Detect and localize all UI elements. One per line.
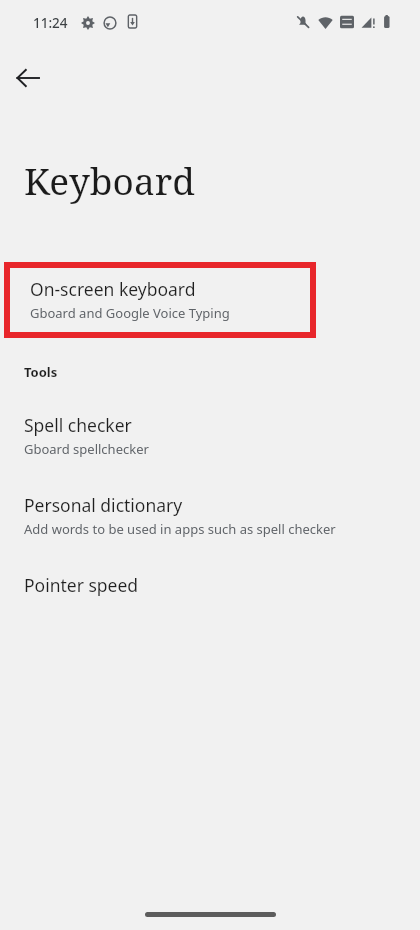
staticText: Pointer speed (24, 573, 139, 597)
staticText: Tools (24, 363, 58, 381)
button[interactable]: Back (6, 56, 50, 100)
staticText: 11:24 (33, 14, 68, 32)
staticText: Spell checker (24, 413, 132, 437)
button[interactable]: Personal dictionary (0, 484, 420, 546)
button[interactable]: Pointer speed (0, 564, 420, 608)
button[interactable]: On-screen keyboard (4, 262, 316, 338)
button[interactable]: Spell checker (0, 404, 420, 466)
staticText: Gboard spellchecker (24, 440, 149, 458)
staticText: Keyboard (24, 155, 195, 205)
staticText: Gboard and Google Voice Typing (30, 304, 230, 322)
staticText: Add words to be used in apps such as spe… (24, 520, 336, 538)
staticText: On-screen keyboard (30, 277, 196, 301)
staticText: Personal dictionary (24, 493, 183, 517)
